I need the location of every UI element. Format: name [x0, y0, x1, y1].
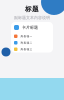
staticText: 列表项一: [20, 35, 32, 38]
staticText: 标题: [25, 5, 39, 13]
staticText: 列表项二: [20, 41, 32, 44]
staticText: 副标题文本内容说明: [14, 15, 50, 20]
staticText: 列表项三: [20, 48, 32, 51]
staticText: 卡片标题: [22, 25, 38, 30]
